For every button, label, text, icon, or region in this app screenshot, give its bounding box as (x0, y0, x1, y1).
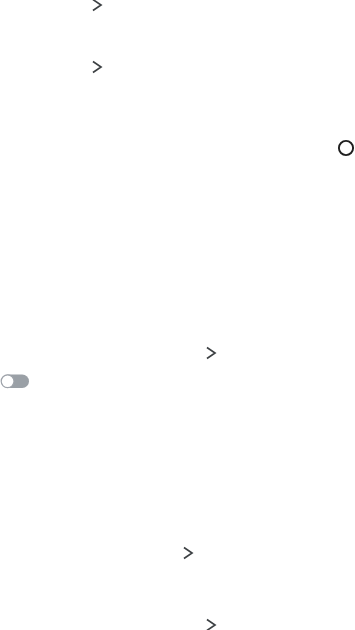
button[interactable]: Show more (176, 541, 200, 565)
button[interactable]: Open settings (199, 341, 223, 365)
button[interactable]: Toggle, off (0, 369, 42, 393)
button[interactable]: Status indicator (334, 136, 355, 160)
button[interactable]: Continue (199, 613, 223, 630)
button[interactable]: Learn more (85, 0, 109, 17)
button[interactable]: See details (85, 55, 109, 79)
